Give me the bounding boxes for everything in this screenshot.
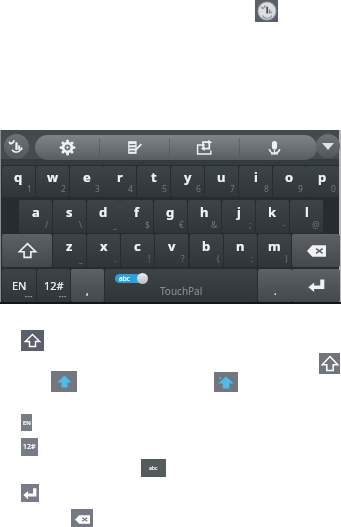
button[interactable]: Shift — [21, 330, 44, 351]
button[interactable]: o — [273, 166, 306, 197]
button[interactable]: abc mode — [115, 274, 146, 283]
button[interactable]: g — [154, 200, 187, 233]
staticText: ( — [217, 253, 220, 265]
button[interactable]: h — [188, 200, 221, 233]
button[interactable]: Symbols — [37, 269, 70, 302]
staticText: g — [166, 203, 175, 221]
button[interactable]: t — [137, 166, 170, 197]
staticText: k — [268, 203, 277, 221]
staticText: j — [237, 203, 241, 221]
staticText: abc — [119, 274, 130, 283]
staticText: v — [168, 237, 176, 255]
button[interactable]: p — [306, 166, 339, 197]
button[interactable]: Voice input — [240, 135, 317, 160]
button[interactable]: Enter — [21, 484, 39, 502]
staticText: TouchPal — [160, 284, 203, 298]
button[interactable]: v — [155, 234, 188, 267]
staticText: 7 — [230, 183, 235, 195]
button[interactable]: a — [19, 200, 52, 233]
button[interactable]: Space — [105, 269, 257, 302]
staticText: d — [99, 203, 108, 221]
button[interactable]: x — [87, 234, 120, 267]
staticText: h — [200, 203, 209, 221]
button[interactable]: Backspace — [71, 509, 93, 527]
staticText: / — [45, 219, 49, 231]
staticText: \ — [79, 219, 83, 231]
button[interactable]: f — [120, 200, 153, 233]
staticText: l — [305, 203, 309, 221]
staticText: x — [100, 237, 108, 255]
button[interactable]: l — [290, 200, 323, 233]
staticText: , — [86, 284, 89, 298]
button[interactable]: Enter — [292, 269, 340, 302]
staticText: @ — [312, 219, 320, 231]
staticText: a — [32, 203, 40, 221]
button[interactable]: b — [190, 234, 223, 267]
staticText: EN — [23, 419, 31, 427]
button[interactable]: Settings — [35, 135, 99, 160]
button[interactable]: TouchPal menu — [4, 134, 29, 159]
staticText: f — [134, 203, 140, 221]
button[interactable]: c — [121, 234, 154, 267]
staticText: b — [202, 237, 211, 255]
staticText: 6 — [196, 183, 201, 195]
staticText: t — [151, 168, 157, 186]
button[interactable]: e — [70, 166, 103, 197]
staticText: c — [134, 237, 141, 255]
staticText: 3 — [95, 183, 100, 195]
staticText: 12# — [23, 442, 36, 452]
button[interactable]: Caps lock — [214, 372, 238, 392]
button[interactable]: n — [224, 234, 257, 267]
staticText: € — [179, 219, 184, 231]
button[interactable]: Shift outline — [319, 353, 340, 374]
button[interactable]: d — [87, 200, 120, 233]
staticText: o — [285, 168, 294, 186]
button[interactable]: Clipboard — [170, 135, 239, 160]
button[interactable]: j — [222, 200, 255, 233]
button[interactable]: TouchPal logo — [255, 0, 278, 22]
staticText: 2 — [61, 183, 66, 195]
button[interactable]: abc — [141, 459, 166, 477]
staticText: m — [268, 237, 281, 255]
staticText: w — [47, 168, 59, 186]
button[interactable]: u — [205, 166, 238, 197]
button[interactable]: k — [256, 200, 289, 233]
button[interactable]: EN — [21, 414, 32, 431]
button[interactable]: Shift enabled — [51, 371, 77, 392]
staticText: 0 — [331, 183, 336, 195]
button[interactable]: r — [103, 166, 136, 197]
staticText: 12# — [44, 278, 64, 293]
button[interactable]: Language — [2, 269, 36, 302]
button[interactable]: Hide keyboard — [316, 134, 340, 158]
staticText: r — [117, 168, 123, 186]
button[interactable]: Shift — [2, 234, 52, 267]
staticText: i — [254, 168, 258, 186]
staticText: - — [283, 219, 286, 231]
staticText: e — [83, 168, 91, 186]
button[interactable]: s — [53, 200, 86, 233]
staticText: y — [184, 168, 192, 186]
staticText: ! — [148, 253, 151, 265]
button[interactable]: Edit text — [100, 135, 169, 160]
staticText: $ — [145, 219, 150, 231]
button[interactable]: q — [2, 166, 35, 197]
button[interactable]: Backspace — [292, 234, 340, 267]
staticText: 8 — [264, 183, 269, 195]
staticText: 1 — [27, 183, 32, 195]
staticText: _ — [79, 253, 83, 265]
button[interactable]: 12# — [21, 438, 38, 456]
staticText: 9 — [298, 183, 303, 195]
staticText: 4 — [128, 183, 133, 195]
staticText: & — [211, 219, 218, 231]
button[interactable]: Period — [258, 269, 292, 302]
staticText: _ — [113, 219, 117, 231]
button[interactable]: Comma — [71, 269, 104, 302]
staticText: ? — [181, 253, 185, 265]
button[interactable]: i — [239, 166, 272, 197]
button[interactable]: m — [258, 234, 291, 267]
button[interactable]: w — [36, 166, 69, 197]
staticText: p — [318, 168, 327, 186]
button[interactable]: y — [171, 166, 204, 197]
staticText: . — [274, 284, 277, 298]
button[interactable]: z — [53, 234, 86, 267]
